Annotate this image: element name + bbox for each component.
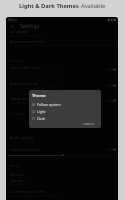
button[interactable]: Dark bbox=[29, 115, 101, 122]
staticText: Theme bbox=[32, 93, 46, 99]
button[interactable]: Light bbox=[29, 108, 101, 115]
staticText: About bbox=[10, 163, 21, 168]
staticText: Dark bbox=[37, 116, 46, 121]
button[interactable]: Toggle bbox=[107, 147, 116, 152]
staticText: General bbox=[10, 58, 24, 63]
button[interactable]: Appearance theme bbox=[6, 38, 118, 44]
button[interactable]: Toggle bbox=[107, 98, 116, 103]
button[interactable]: Use mobile data bbox=[6, 65, 118, 74]
button[interactable]: Toggle bbox=[107, 67, 116, 72]
staticText: Theme bbox=[10, 178, 23, 183]
button[interactable]: Follow system bbox=[29, 101, 101, 108]
staticText: Settings bbox=[20, 23, 40, 30]
staticText: Follow system bbox=[37, 102, 61, 107]
button[interactable]: Licenses and terms bbox=[6, 189, 118, 198]
staticText: Crossfade tracks bbox=[10, 147, 107, 152]
staticText: Appearance theme bbox=[10, 39, 116, 44]
staticText: Auto-download bbox=[10, 81, 38, 86]
button[interactable]: Notifications bbox=[6, 96, 118, 105]
button[interactable]: Crossfade tracks bbox=[6, 146, 118, 152]
button[interactable]: Back bbox=[9, 23, 16, 30]
staticText: Licenses and terms bbox=[10, 189, 46, 194]
staticText: Notifications bbox=[10, 96, 34, 101]
staticText: Get alerts about new releases bbox=[10, 101, 53, 105]
staticText: 9:41 bbox=[8, 18, 14, 22]
button[interactable]: CANCEL bbox=[81, 122, 98, 126]
staticText: Light & Dark Themes bbox=[19, 2, 81, 10]
staticText: Audio quality bbox=[10, 135, 35, 140]
staticText: Playback bbox=[10, 111, 26, 116]
staticText: Available bbox=[81, 2, 106, 10]
staticText: Language bbox=[10, 29, 29, 34]
button[interactable]: Auto-download bbox=[6, 81, 118, 90]
staticText: CANCEL bbox=[83, 123, 96, 125]
staticText: Light bbox=[37, 109, 46, 114]
staticText: Use mobile data bbox=[10, 65, 40, 70]
button[interactable]: Toggle bbox=[107, 83, 116, 88]
